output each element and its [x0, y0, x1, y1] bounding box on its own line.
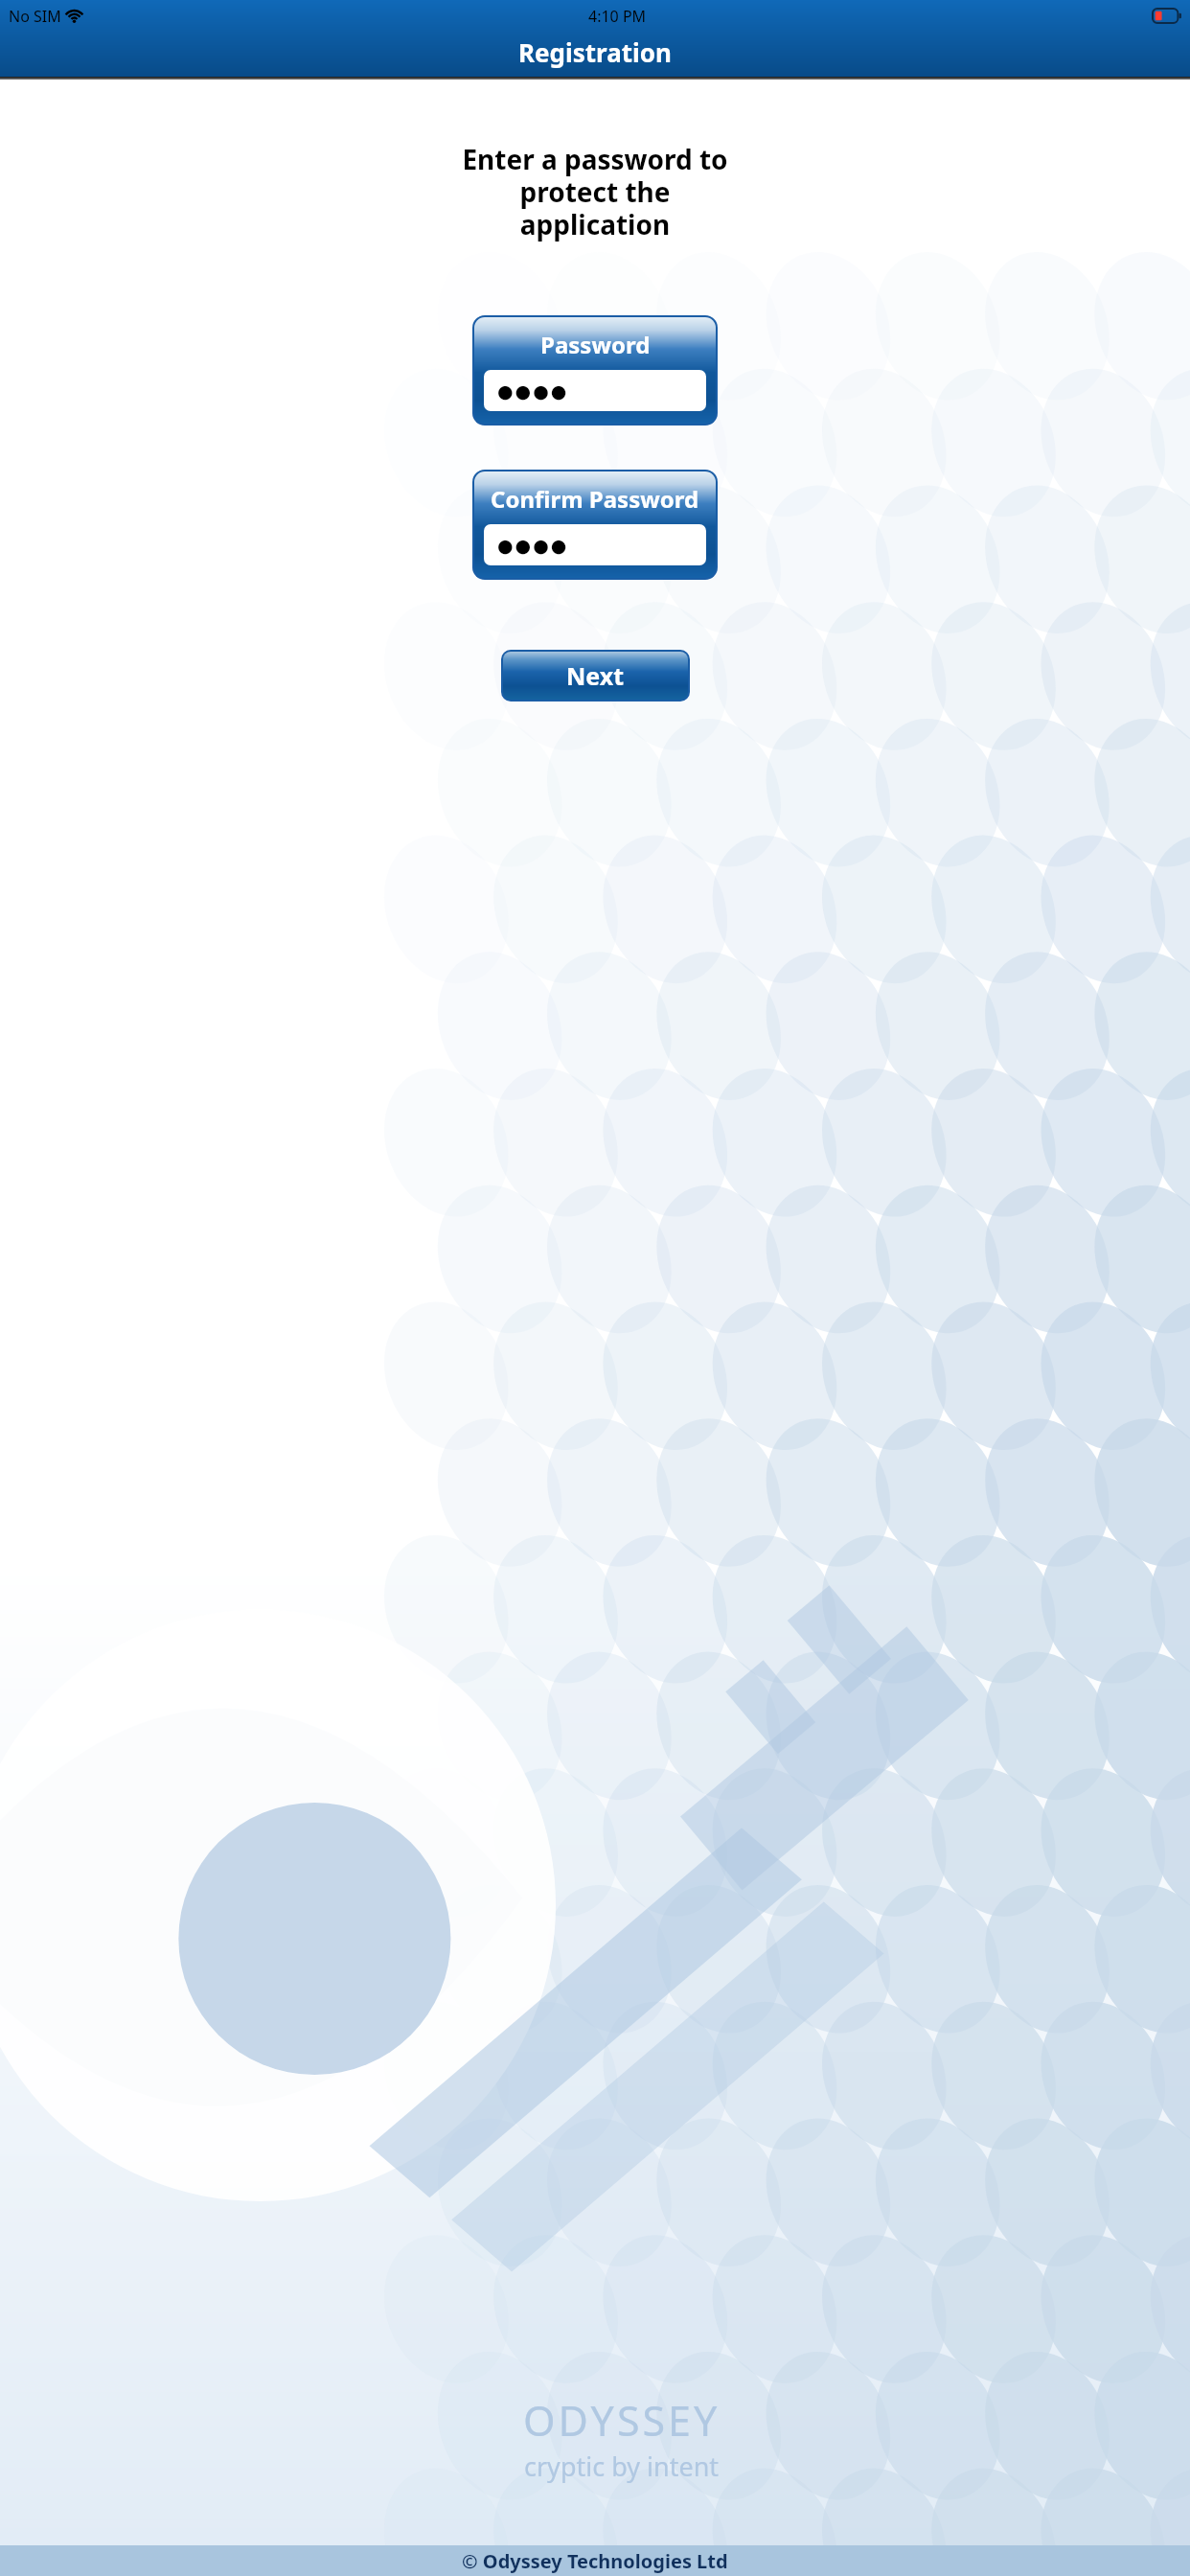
staticText: No SIM	[9, 6, 61, 27]
staticText: Enter a password to protect the applicat…	[446, 141, 744, 242]
staticText: ODYSSEY	[523, 2392, 721, 2449]
staticText: Next	[566, 659, 625, 692]
staticText: ●●●●	[497, 380, 569, 402]
button[interactable]: Password	[474, 317, 716, 424]
staticText: Confirm Password	[491, 483, 699, 515]
staticText: Password	[540, 329, 651, 360]
staticText: Registration	[518, 35, 673, 69]
button[interactable]: Next	[503, 652, 688, 700]
button[interactable]: Confirm Password	[474, 471, 716, 578]
staticText: ●●●●	[497, 535, 569, 556]
staticText: 4:10 PM	[588, 6, 647, 27]
staticText: cryptic by intent	[524, 2449, 720, 2484]
staticText: © Odyssey Technologies Ltd	[462, 2548, 728, 2574]
